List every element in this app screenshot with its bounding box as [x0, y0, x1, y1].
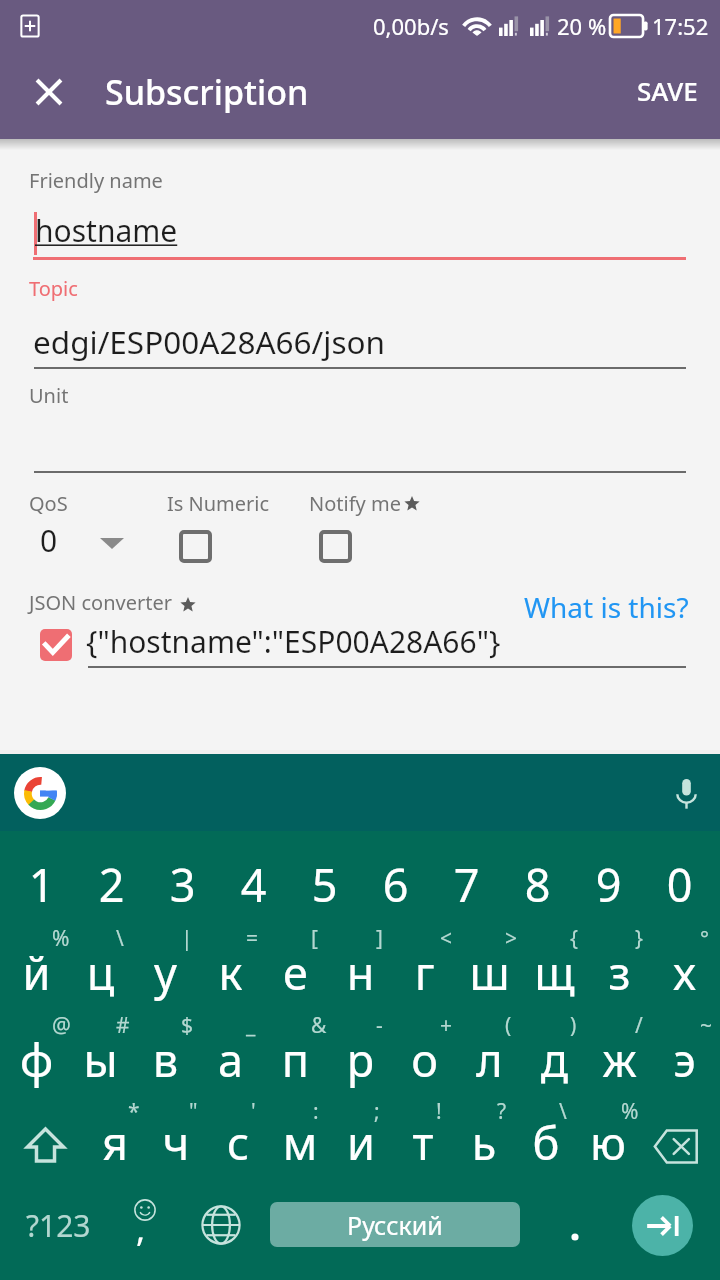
staticText: *	[128, 1097, 140, 1126]
staticText: :	[313, 1097, 319, 1126]
staticText: %	[52, 924, 70, 953]
button[interactable]: 4	[218, 840, 289, 927]
staticText: ;	[374, 1097, 380, 1126]
button[interactable]: 6	[360, 840, 431, 927]
staticText: What is this?	[524, 588, 689, 626]
button[interactable]: "	[145, 1101, 207, 1188]
staticText: $	[181, 1011, 194, 1040]
button[interactable]: Is Numeric checkbox	[179, 530, 212, 563]
button[interactable]: Voice input	[658, 767, 714, 819]
button[interactable]: Close	[16, 59, 82, 125]
staticText: ы	[68, 1029, 133, 1090]
button[interactable]: _	[198, 1014, 263, 1101]
staticText: ?123	[26, 1205, 91, 1246]
button[interactable]: \	[68, 927, 133, 1014]
button[interactable]: :	[269, 1101, 331, 1188]
staticText: \	[116, 924, 124, 953]
button[interactable]: Google	[14, 767, 66, 819]
button[interactable]: &	[263, 1014, 328, 1101]
button[interactable]: Change language	[186, 1186, 256, 1264]
button[interactable]: JSON converter checkbox	[40, 629, 72, 661]
button[interactable]: @	[4, 1014, 69, 1101]
staticText: у	[133, 942, 198, 1003]
button[interactable]: =	[198, 927, 263, 1014]
button[interactable]: Emoji	[112, 1186, 178, 1264]
button[interactable]: SAVE	[615, 53, 720, 128]
staticText: \	[559, 1097, 567, 1126]
staticText: )	[570, 1011, 577, 1040]
button[interactable]: !	[392, 1101, 454, 1188]
staticText: JSON converter	[29, 589, 172, 616]
button[interactable]: %	[4, 927, 69, 1014]
button[interactable]: 7	[431, 840, 502, 927]
button[interactable]: \	[515, 1101, 577, 1188]
button[interactable]: [	[263, 927, 328, 1014]
button[interactable]: 1	[6, 840, 77, 927]
button[interactable]: (	[457, 1014, 522, 1101]
staticText: и	[330, 1112, 392, 1173]
button[interactable]: 8	[502, 840, 573, 927]
staticText: QoS	[29, 490, 68, 517]
button[interactable]: 3	[147, 840, 218, 927]
button[interactable]: <	[392, 927, 457, 1014]
staticText: ~	[700, 1011, 713, 1040]
button[interactable]: +	[392, 1014, 457, 1101]
staticText: #	[116, 1011, 130, 1040]
staticText: ф	[4, 1029, 69, 1090]
button[interactable]: {	[522, 927, 587, 1014]
staticText: SAVE	[637, 73, 698, 108]
button[interactable]: #	[68, 1014, 133, 1101]
staticText: д	[522, 1029, 587, 1090]
button[interactable]: )	[522, 1014, 587, 1101]
staticText: _	[246, 1011, 256, 1040]
staticText: hostname	[35, 210, 178, 251]
button[interactable]: *	[84, 1101, 146, 1188]
button[interactable]: 5	[289, 840, 360, 927]
staticText: /	[635, 1011, 643, 1040]
staticText: н	[328, 942, 393, 1003]
button[interactable]: '	[207, 1101, 269, 1188]
button[interactable]: Русский	[270, 1202, 520, 1247]
button[interactable]: Period	[540, 1186, 606, 1264]
staticText: ?	[497, 1097, 507, 1126]
staticText: Notify me	[309, 490, 401, 517]
button[interactable]: ~	[652, 1014, 717, 1101]
button[interactable]: What is this?	[516, 580, 697, 634]
button[interactable]: Notify me checkbox	[319, 530, 352, 563]
button[interactable]: ?	[453, 1101, 515, 1188]
staticText: Topic	[29, 275, 78, 302]
staticText: в	[133, 1029, 198, 1090]
button[interactable]: 2	[76, 840, 147, 927]
staticText: 0	[644, 854, 715, 915]
staticText: к	[198, 942, 263, 1003]
button[interactable]: /	[587, 1014, 652, 1101]
staticText: '	[251, 1097, 256, 1126]
button[interactable]: %	[577, 1101, 639, 1188]
button[interactable]: Backspace	[634, 1105, 718, 1187]
button[interactable]: |	[133, 927, 198, 1014]
button[interactable]: >	[457, 927, 522, 1014]
staticText: Unit	[29, 382, 69, 409]
button[interactable]: 9	[573, 840, 644, 927]
staticText: 5	[289, 854, 360, 915]
button[interactable]: $	[133, 1014, 198, 1101]
button[interactable]: Enter	[632, 1195, 693, 1256]
button[interactable]: 0	[644, 840, 715, 927]
staticText: [	[311, 924, 318, 953]
button[interactable]: }	[587, 927, 652, 1014]
button[interactable]: ;	[330, 1101, 392, 1188]
staticText: Is Numeric	[167, 490, 270, 517]
button[interactable]: ]	[328, 927, 393, 1014]
staticText: б	[515, 1112, 577, 1173]
button[interactable]: -	[328, 1014, 393, 1101]
button[interactable]: ?123	[6, 1186, 110, 1264]
staticText: о	[392, 1029, 457, 1090]
button[interactable]: Shift	[3, 1104, 87, 1186]
staticText: Русский	[347, 1208, 443, 1242]
button[interactable]: QoS dropdown	[91, 524, 133, 562]
staticText: 20 %	[557, 11, 607, 41]
staticText: 7	[431, 854, 502, 915]
staticText: ]	[376, 924, 383, 953]
button[interactable]: °	[652, 927, 717, 1014]
staticText: 9	[573, 854, 644, 915]
